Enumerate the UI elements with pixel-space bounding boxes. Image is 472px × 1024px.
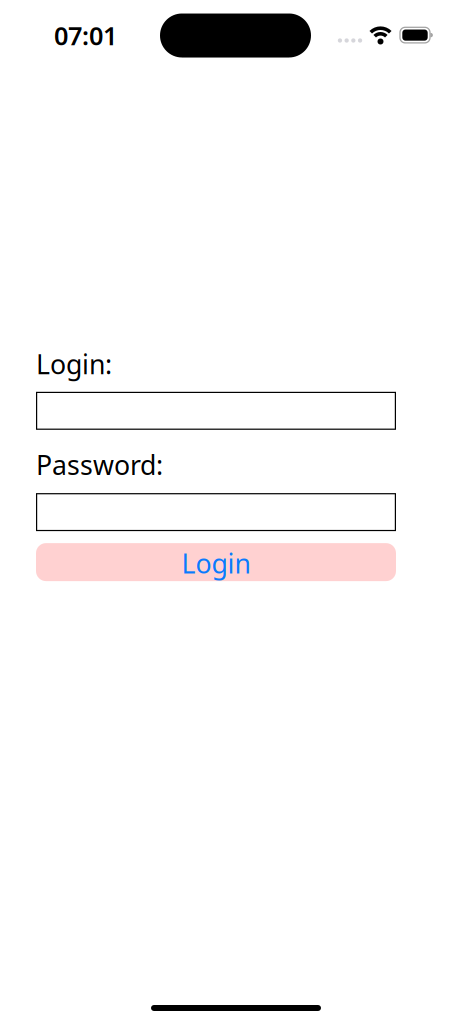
staticText: Login (181, 545, 250, 581)
staticText: Login: (36, 346, 112, 382)
button[interactable]: Login (36, 543, 396, 581)
staticText: 07:01 (54, 19, 117, 52)
staticText: Password: (36, 447, 163, 482)
textField[interactable] (36, 393, 396, 428)
secureTextField[interactable] (36, 494, 396, 530)
